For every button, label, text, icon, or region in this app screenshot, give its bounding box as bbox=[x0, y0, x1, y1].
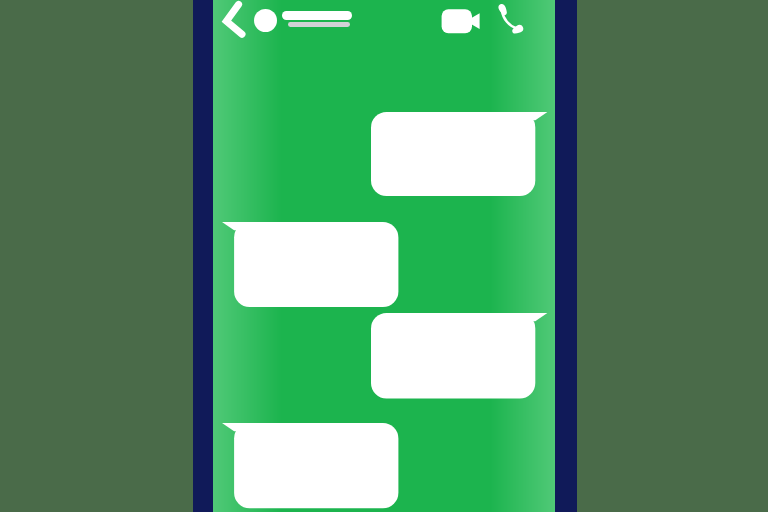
button[interactable]: Video call bbox=[437, 0, 481, 44]
button[interactable]: Received message bbox=[222, 423, 398, 508]
button[interactable]: Received message bbox=[222, 222, 398, 307]
button[interactable]: Contact profile bbox=[253, 0, 368, 44]
button[interactable]: Sent message bbox=[371, 313, 547, 399]
button[interactable]: Back bbox=[217, 0, 255, 44]
button[interactable]: Sent message bbox=[371, 112, 547, 196]
button[interactable]: Voice call bbox=[495, 0, 537, 44]
